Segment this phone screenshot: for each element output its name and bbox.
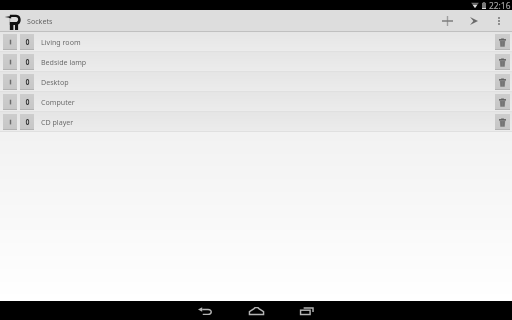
staticText: 22:16: [489, 0, 511, 10]
staticText: Computer: [41, 97, 75, 107]
button[interactable]: Delete: [495, 34, 510, 50]
button[interactable]: Delete: [495, 94, 510, 110]
button[interactable]: Delete: [495, 114, 510, 130]
staticText: Desktop: [41, 77, 69, 87]
button[interactable]: Home: [237, 301, 275, 320]
button[interactable]: Back: [186, 301, 224, 320]
button[interactable]: Turn on: [3, 54, 17, 70]
button[interactable]: Delete: [495, 54, 510, 70]
button[interactable]: Turn on: [0, 32, 512, 51]
staticText: Bedside lamp: [41, 57, 87, 67]
button[interactable]: Send: [464, 12, 483, 31]
button[interactable]: Turn on: [3, 114, 17, 130]
staticText: CD player: [41, 117, 74, 127]
button[interactable]: Add: [438, 12, 457, 31]
button[interactable]: Turn on: [0, 112, 512, 131]
button[interactable]: Turn on: [0, 72, 512, 91]
button[interactable]: Turn off: [20, 114, 34, 130]
button[interactable]: Turn off: [20, 54, 34, 70]
button[interactable]: Delete: [495, 74, 510, 90]
button[interactable]: Turn on: [0, 52, 512, 71]
button[interactable]: Turn on: [0, 92, 512, 111]
button[interactable]: Turn on: [3, 94, 17, 110]
staticText: Sockets: [27, 16, 53, 26]
button[interactable]: Turn off: [20, 94, 34, 110]
button[interactable]: Turn on: [3, 74, 17, 90]
button[interactable]: Turn on: [3, 34, 17, 50]
staticText: Living room: [41, 37, 81, 47]
button[interactable]: Recent apps: [288, 301, 326, 320]
button[interactable]: Turn off: [20, 34, 34, 50]
button[interactable]: More options: [489, 12, 508, 31]
button[interactable]: Turn off: [20, 74, 34, 90]
